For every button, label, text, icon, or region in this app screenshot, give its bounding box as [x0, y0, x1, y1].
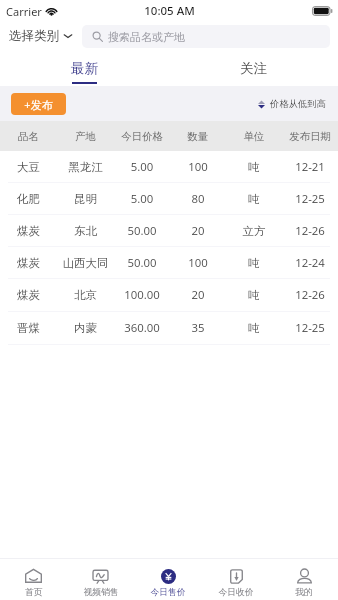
staticText: 黑龙江: [57, 160, 114, 174]
staticText: +发布: [24, 97, 53, 112]
staticText: 12-21: [282, 159, 338, 175]
staticText: 选择类别: [9, 28, 59, 44]
staticText: 100: [170, 255, 226, 271]
staticText: 发布日期: [282, 130, 338, 143]
staticText: 吨: [226, 288, 282, 302]
staticText: 50.00: [114, 255, 170, 271]
staticText: 东北: [57, 224, 114, 238]
staticText: 晋煤: [0, 321, 57, 335]
button[interactable]: 价格从低到高: [258, 98, 326, 110]
staticText: 北京: [57, 288, 114, 302]
staticText: 今日收价: [218, 587, 254, 598]
staticText: 品名: [0, 130, 57, 143]
staticText: 12-25: [282, 191, 338, 207]
staticText: 吨: [226, 192, 282, 206]
button[interactable]: 关注: [169, 50, 338, 86]
staticText: 关注: [240, 60, 267, 77]
staticText: Carrier: [6, 4, 42, 19]
staticText: 单位: [226, 130, 282, 143]
button[interactable]: 选择类别: [9, 28, 73, 44]
staticText: 80: [170, 191, 226, 207]
staticText: 今日价格: [114, 130, 170, 143]
button[interactable]: 晋煤: [0, 312, 338, 344]
staticText: 数量: [170, 130, 226, 143]
staticText: 100.00: [114, 287, 170, 303]
staticText: 吨: [226, 256, 282, 270]
staticText: 价格从低到高: [270, 98, 326, 110]
staticText: 5.00: [114, 159, 170, 175]
button[interactable]: 搜索品名或产地: [82, 25, 330, 48]
staticText: 煤炭: [0, 224, 57, 238]
staticText: 20: [170, 223, 226, 239]
button[interactable]: 今日收价: [202, 559, 270, 600]
staticText: 内蒙: [57, 321, 114, 335]
staticText: 化肥: [0, 192, 57, 206]
staticText: 大豆: [0, 160, 57, 174]
button[interactable]: 煤炭: [0, 215, 338, 246]
staticText: 50.00: [114, 223, 170, 239]
staticText: 5.00: [114, 191, 170, 207]
staticText: 立方: [226, 224, 282, 238]
staticText: 12-26: [282, 287, 338, 303]
staticText: 产地: [57, 130, 114, 143]
staticText: 煤炭: [0, 256, 57, 270]
staticText: 12-24: [282, 255, 338, 271]
staticText: 20: [170, 287, 226, 303]
button[interactable]: 视频销售: [67, 559, 134, 600]
button[interactable]: 大豆: [0, 151, 338, 182]
staticText: 35: [170, 320, 226, 336]
staticText: 最新: [71, 60, 98, 77]
staticText: 我的: [295, 587, 313, 598]
staticText: 10:05 AM: [144, 3, 195, 19]
button[interactable]: 首页: [0, 559, 67, 600]
button[interactable]: 最新: [0, 50, 169, 86]
staticText: 煤炭: [0, 288, 57, 302]
staticText: 吨: [226, 160, 282, 174]
button[interactable]: 化肥: [0, 183, 338, 214]
staticText: 山西大同: [57, 256, 114, 270]
button[interactable]: 今日售价: [134, 559, 202, 600]
staticText: 昆明: [57, 192, 114, 206]
button[interactable]: 煤炭: [0, 279, 338, 311]
staticText: 首页: [25, 587, 43, 598]
staticText: 12-25: [282, 320, 338, 336]
staticText: 搜索品名或产地: [108, 30, 185, 44]
staticText: 360.00: [114, 320, 170, 336]
staticText: 吨: [226, 321, 282, 335]
button[interactable]: +发布: [11, 93, 66, 115]
button[interactable]: 煤炭: [0, 247, 338, 278]
staticText: 100: [170, 159, 226, 175]
staticText: 今日售价: [150, 587, 186, 598]
staticText: 视频销售: [83, 587, 119, 598]
staticText: 12-26: [282, 223, 338, 239]
button[interactable]: 我的: [270, 559, 338, 600]
